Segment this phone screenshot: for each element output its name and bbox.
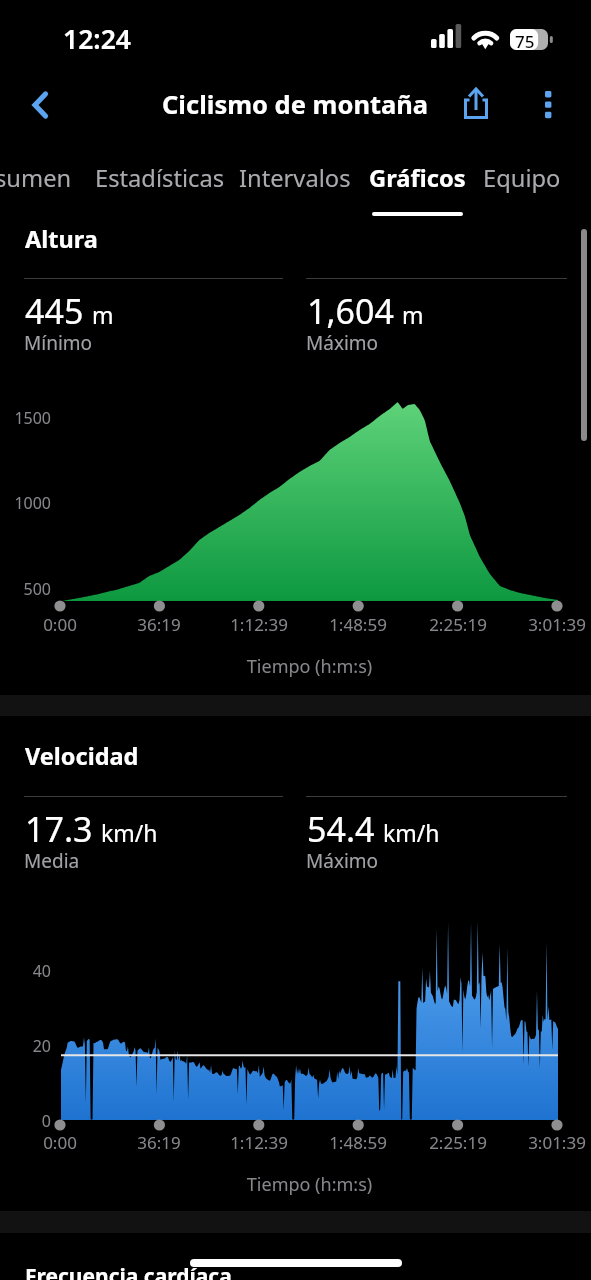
- staticText: Estadísticas: [95, 162, 225, 194]
- staticText: km/h: [383, 817, 440, 848]
- staticText: 1:12:39: [199, 1131, 319, 1154]
- staticText: Mínimo: [24, 330, 93, 356]
- staticText: Tiempo (h:m:s): [61, 1172, 558, 1197]
- staticText: 1000: [0, 492, 51, 514]
- staticText: 40: [0, 960, 51, 982]
- staticText: Gráficos: [369, 162, 466, 194]
- staticText: m: [402, 299, 424, 330]
- staticText: 3:01:39: [497, 613, 591, 636]
- staticText: sumen: [0, 162, 72, 194]
- button[interactable]: Share: [452, 78, 500, 126]
- staticText: 3:01:39: [497, 1131, 591, 1154]
- staticText: Intervalos: [239, 162, 351, 194]
- staticText: Velocidad: [25, 740, 139, 772]
- staticText: m: [92, 299, 114, 330]
- staticText: 12:24: [63, 21, 131, 57]
- button[interactable]: Equipo: [482, 148, 562, 218]
- staticText: 2:25:19: [398, 613, 518, 636]
- staticText: 1:48:59: [298, 613, 418, 636]
- staticText: 75: [515, 30, 535, 53]
- staticText: 17.3: [25, 806, 93, 852]
- staticText: 54.4: [307, 806, 375, 852]
- staticText: 36:19: [99, 613, 219, 636]
- staticText: Frecuencia cardíaca: [25, 1262, 232, 1280]
- staticText: 445: [25, 288, 84, 334]
- staticText: 1:12:39: [199, 613, 319, 636]
- staticText: 0:00: [0, 613, 120, 636]
- button[interactable]: Estadísticas: [92, 148, 228, 218]
- staticText: 36:19: [99, 1131, 219, 1154]
- staticText: 0: [0, 1110, 51, 1132]
- staticText: 1:48:59: [298, 1131, 418, 1154]
- button[interactable]: Intervalos: [238, 148, 352, 218]
- staticText: Ciclismo de montaña: [162, 87, 429, 122]
- staticText: 500: [0, 578, 51, 600]
- button[interactable]: sumen: [0, 148, 76, 218]
- staticText: 0:00: [0, 1131, 120, 1154]
- button[interactable]: Gráficos: [365, 148, 470, 218]
- staticText: Media: [24, 848, 80, 874]
- staticText: km/h: [101, 817, 158, 848]
- staticText: Máximo: [306, 848, 379, 874]
- staticText: 1500: [0, 407, 51, 429]
- button[interactable]: More options: [522, 78, 570, 126]
- staticText: 2:25:19: [398, 1131, 518, 1154]
- button[interactable]: Back: [13, 78, 67, 132]
- staticText: Equipo: [483, 162, 561, 194]
- staticText: 20: [0, 1035, 51, 1057]
- staticText: Tiempo (h:m:s): [61, 654, 558, 679]
- staticText: Máximo: [306, 330, 379, 356]
- staticText: Altura: [25, 223, 98, 255]
- staticText: 1,604: [307, 288, 394, 334]
